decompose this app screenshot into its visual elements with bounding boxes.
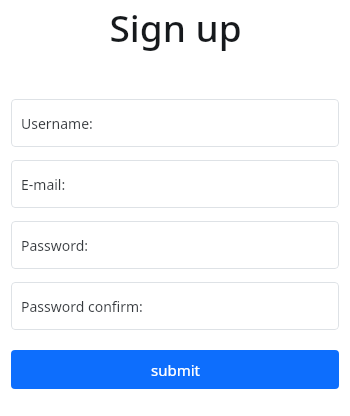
staticText: Sign up bbox=[109, 2, 242, 52]
staticText: Password: bbox=[21, 236, 89, 255]
button[interactable]: E-mail: bbox=[11, 160, 339, 208]
button[interactable]: Password confirm: bbox=[11, 282, 339, 330]
staticText: Password confirm: bbox=[21, 297, 143, 316]
staticText: submit bbox=[151, 360, 200, 380]
staticText: Username: bbox=[21, 114, 93, 133]
staticText: E-mail: bbox=[21, 175, 66, 194]
button[interactable]: Password: bbox=[11, 221, 339, 269]
button[interactable]: submit bbox=[11, 350, 339, 389]
button[interactable]: Username: bbox=[11, 99, 339, 147]
